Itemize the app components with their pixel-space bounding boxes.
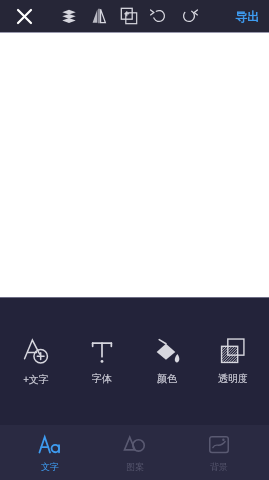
button[interactable]: 图案 xyxy=(100,425,170,480)
button[interactable]: Layers xyxy=(54,1,84,31)
button[interactable]: Close xyxy=(8,0,40,32)
staticText: 字体 xyxy=(92,372,112,385)
staticText: 图案 xyxy=(126,461,144,472)
button[interactable]: 背景 xyxy=(184,425,254,480)
button[interactable]: +文字 xyxy=(6,338,66,386)
staticText: 透明度 xyxy=(218,372,248,385)
button[interactable]: Redo xyxy=(174,1,204,31)
button[interactable]: 字体 xyxy=(72,338,132,385)
button[interactable]: Mirror xyxy=(84,1,114,31)
button[interactable]: 颜色 xyxy=(137,338,197,385)
staticText: 颜色 xyxy=(157,372,177,385)
button[interactable]: 透明度 xyxy=(203,338,263,385)
staticText: 导出 xyxy=(235,9,259,24)
button[interactable]: Duplicate xyxy=(114,1,144,31)
button[interactable]: 文字 xyxy=(15,425,85,480)
staticText: 文字 xyxy=(41,461,59,472)
staticText: +文字 xyxy=(23,372,49,386)
staticText: 背景 xyxy=(210,461,228,472)
button[interactable]: Undo xyxy=(144,1,174,31)
button[interactable]: 导出 xyxy=(231,5,263,28)
